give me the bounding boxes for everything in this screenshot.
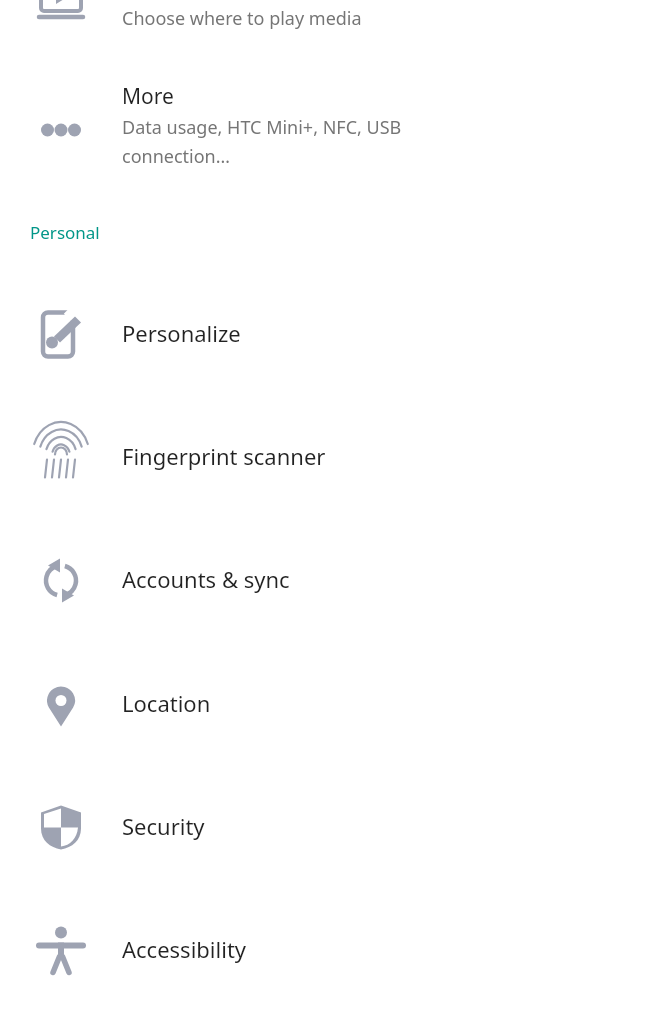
button[interactable]: Accounts & sync bbox=[0, 519, 662, 642]
button[interactable]: Fingerprint scanner bbox=[0, 396, 662, 519]
staticText: Accessibility bbox=[122, 934, 247, 964]
button[interactable]: Accessibility bbox=[0, 889, 662, 1012]
staticText: Security bbox=[122, 811, 205, 841]
staticText: Location bbox=[122, 688, 211, 718]
button[interactable]: Security bbox=[0, 766, 662, 889]
button[interactable]: Media output bbox=[0, 0, 662, 62]
button[interactable]: More bbox=[0, 66, 662, 200]
staticText: Accounts & sync bbox=[122, 564, 290, 594]
staticText: Fingerprint scanner bbox=[122, 441, 326, 471]
staticText: Personal bbox=[30, 221, 100, 244]
staticText: Choose where to play media bbox=[122, 6, 362, 31]
staticText: Data usage, HTC Mini+, NFC, USB bbox=[122, 115, 402, 140]
button[interactable]: Personalize bbox=[0, 273, 662, 396]
staticText: connection… bbox=[122, 144, 230, 169]
staticText: More bbox=[122, 82, 174, 111]
staticText: Personalize bbox=[122, 318, 241, 348]
button[interactable]: Location bbox=[0, 643, 662, 766]
